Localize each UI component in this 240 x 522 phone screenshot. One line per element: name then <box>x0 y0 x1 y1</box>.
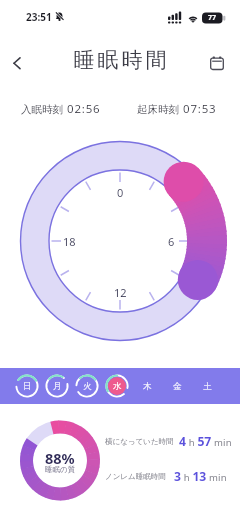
staticText: 07:53 <box>183 101 217 117</box>
staticText: 77 <box>208 13 217 23</box>
staticText: 起床時刻 <box>137 103 179 116</box>
staticText: 3 h 13 min <box>174 468 227 485</box>
staticText: 木 <box>143 381 152 392</box>
staticText: 金 <box>173 381 182 392</box>
staticText: 日 <box>23 381 32 392</box>
staticText: 0 <box>117 185 124 200</box>
staticText: 88% <box>45 448 75 464</box>
button[interactable]: 金 <box>162 368 192 404</box>
staticText: 睡眠時間 <box>72 47 168 73</box>
button[interactable]: 土 <box>192 368 222 404</box>
staticText: 12 <box>114 285 127 300</box>
staticText: 水 <box>113 381 122 392</box>
button[interactable]: 火 <box>72 368 102 404</box>
staticText: 18 <box>63 234 76 249</box>
button[interactable]: 水 <box>102 368 132 404</box>
staticText: 4 h 57 min <box>179 433 232 450</box>
button[interactable] <box>4 50 30 76</box>
staticText: 睡眠の質 <box>45 465 76 474</box>
staticText: 横になっていた時間 <box>105 437 174 446</box>
staticText: 入眠時刻 <box>21 103 63 116</box>
button[interactable]: 月 <box>42 368 72 404</box>
staticText: 土 <box>203 381 212 392</box>
staticText: 月 <box>53 381 62 392</box>
staticText: 23:51 <box>26 10 52 24</box>
staticText: 6 <box>168 234 175 249</box>
staticText: 火 <box>83 381 92 392</box>
button[interactable]: 日 <box>12 368 42 404</box>
button[interactable]: 木 <box>132 368 162 404</box>
staticText: 02:56 <box>67 101 101 117</box>
button[interactable] <box>202 49 232 77</box>
staticText: ノンレム睡眠時間 <box>105 472 166 481</box>
